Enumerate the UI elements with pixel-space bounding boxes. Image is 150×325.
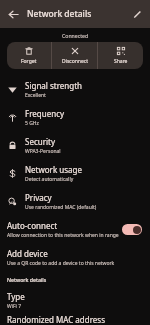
button[interactable]: Forget — [7, 42, 51, 69]
button[interactable]: Edit — [127, 4, 147, 24]
button[interactable]: Disconnect — [52, 42, 97, 69]
button[interactable]: Privacy — [0, 187, 150, 215]
button[interactable]: Frequency — [0, 103, 150, 131]
button[interactable]: Randomized MAC address — [0, 314, 150, 325]
staticText: Excellent — [25, 92, 46, 99]
staticText: Randomized MAC address — [7, 314, 105, 325]
staticText: Detect automatically — [25, 176, 74, 183]
button[interactable]: Type — [0, 287, 150, 314]
button[interactable]: Security — [0, 131, 150, 159]
staticText: Use randomized MAC (default) — [25, 204, 97, 211]
staticText: WPA3-Personal — [25, 148, 61, 155]
staticText: Signal strength — [25, 80, 83, 91]
button[interactable]: Back — [2, 3, 24, 25]
button[interactable]: Add device — [0, 244, 150, 271]
staticText: Frequency — [25, 108, 65, 119]
staticText: Allow connection to this network when in… — [7, 232, 119, 239]
button[interactable]: Auto-connect — [7, 215, 142, 244]
staticText: Privacy — [25, 192, 52, 203]
staticText: Security — [25, 136, 56, 147]
staticText: Network details — [7, 276, 47, 283]
staticText: Add device — [7, 248, 48, 259]
staticText: Auto-connect — [7, 220, 58, 231]
button[interactable]: Share — [98, 42, 143, 69]
staticText: Network usage — [25, 164, 82, 175]
staticText: Forget — [21, 58, 37, 65]
staticText: Type — [7, 291, 25, 302]
staticText: 5 GHz — [25, 120, 39, 127]
button[interactable]: Signal strength — [0, 75, 150, 103]
staticText: Disconnect — [62, 58, 88, 65]
staticText: Use a QR code to add a device to this ne… — [7, 260, 115, 267]
staticText: Network details — [27, 8, 92, 20]
staticText: Share — [114, 58, 128, 65]
button[interactable]: Auto-connect toggle — [122, 224, 142, 235]
staticText: WiFi 7 — [7, 303, 21, 310]
staticText: Connected — [62, 32, 89, 39]
button[interactable]: Network usage — [0, 159, 150, 187]
